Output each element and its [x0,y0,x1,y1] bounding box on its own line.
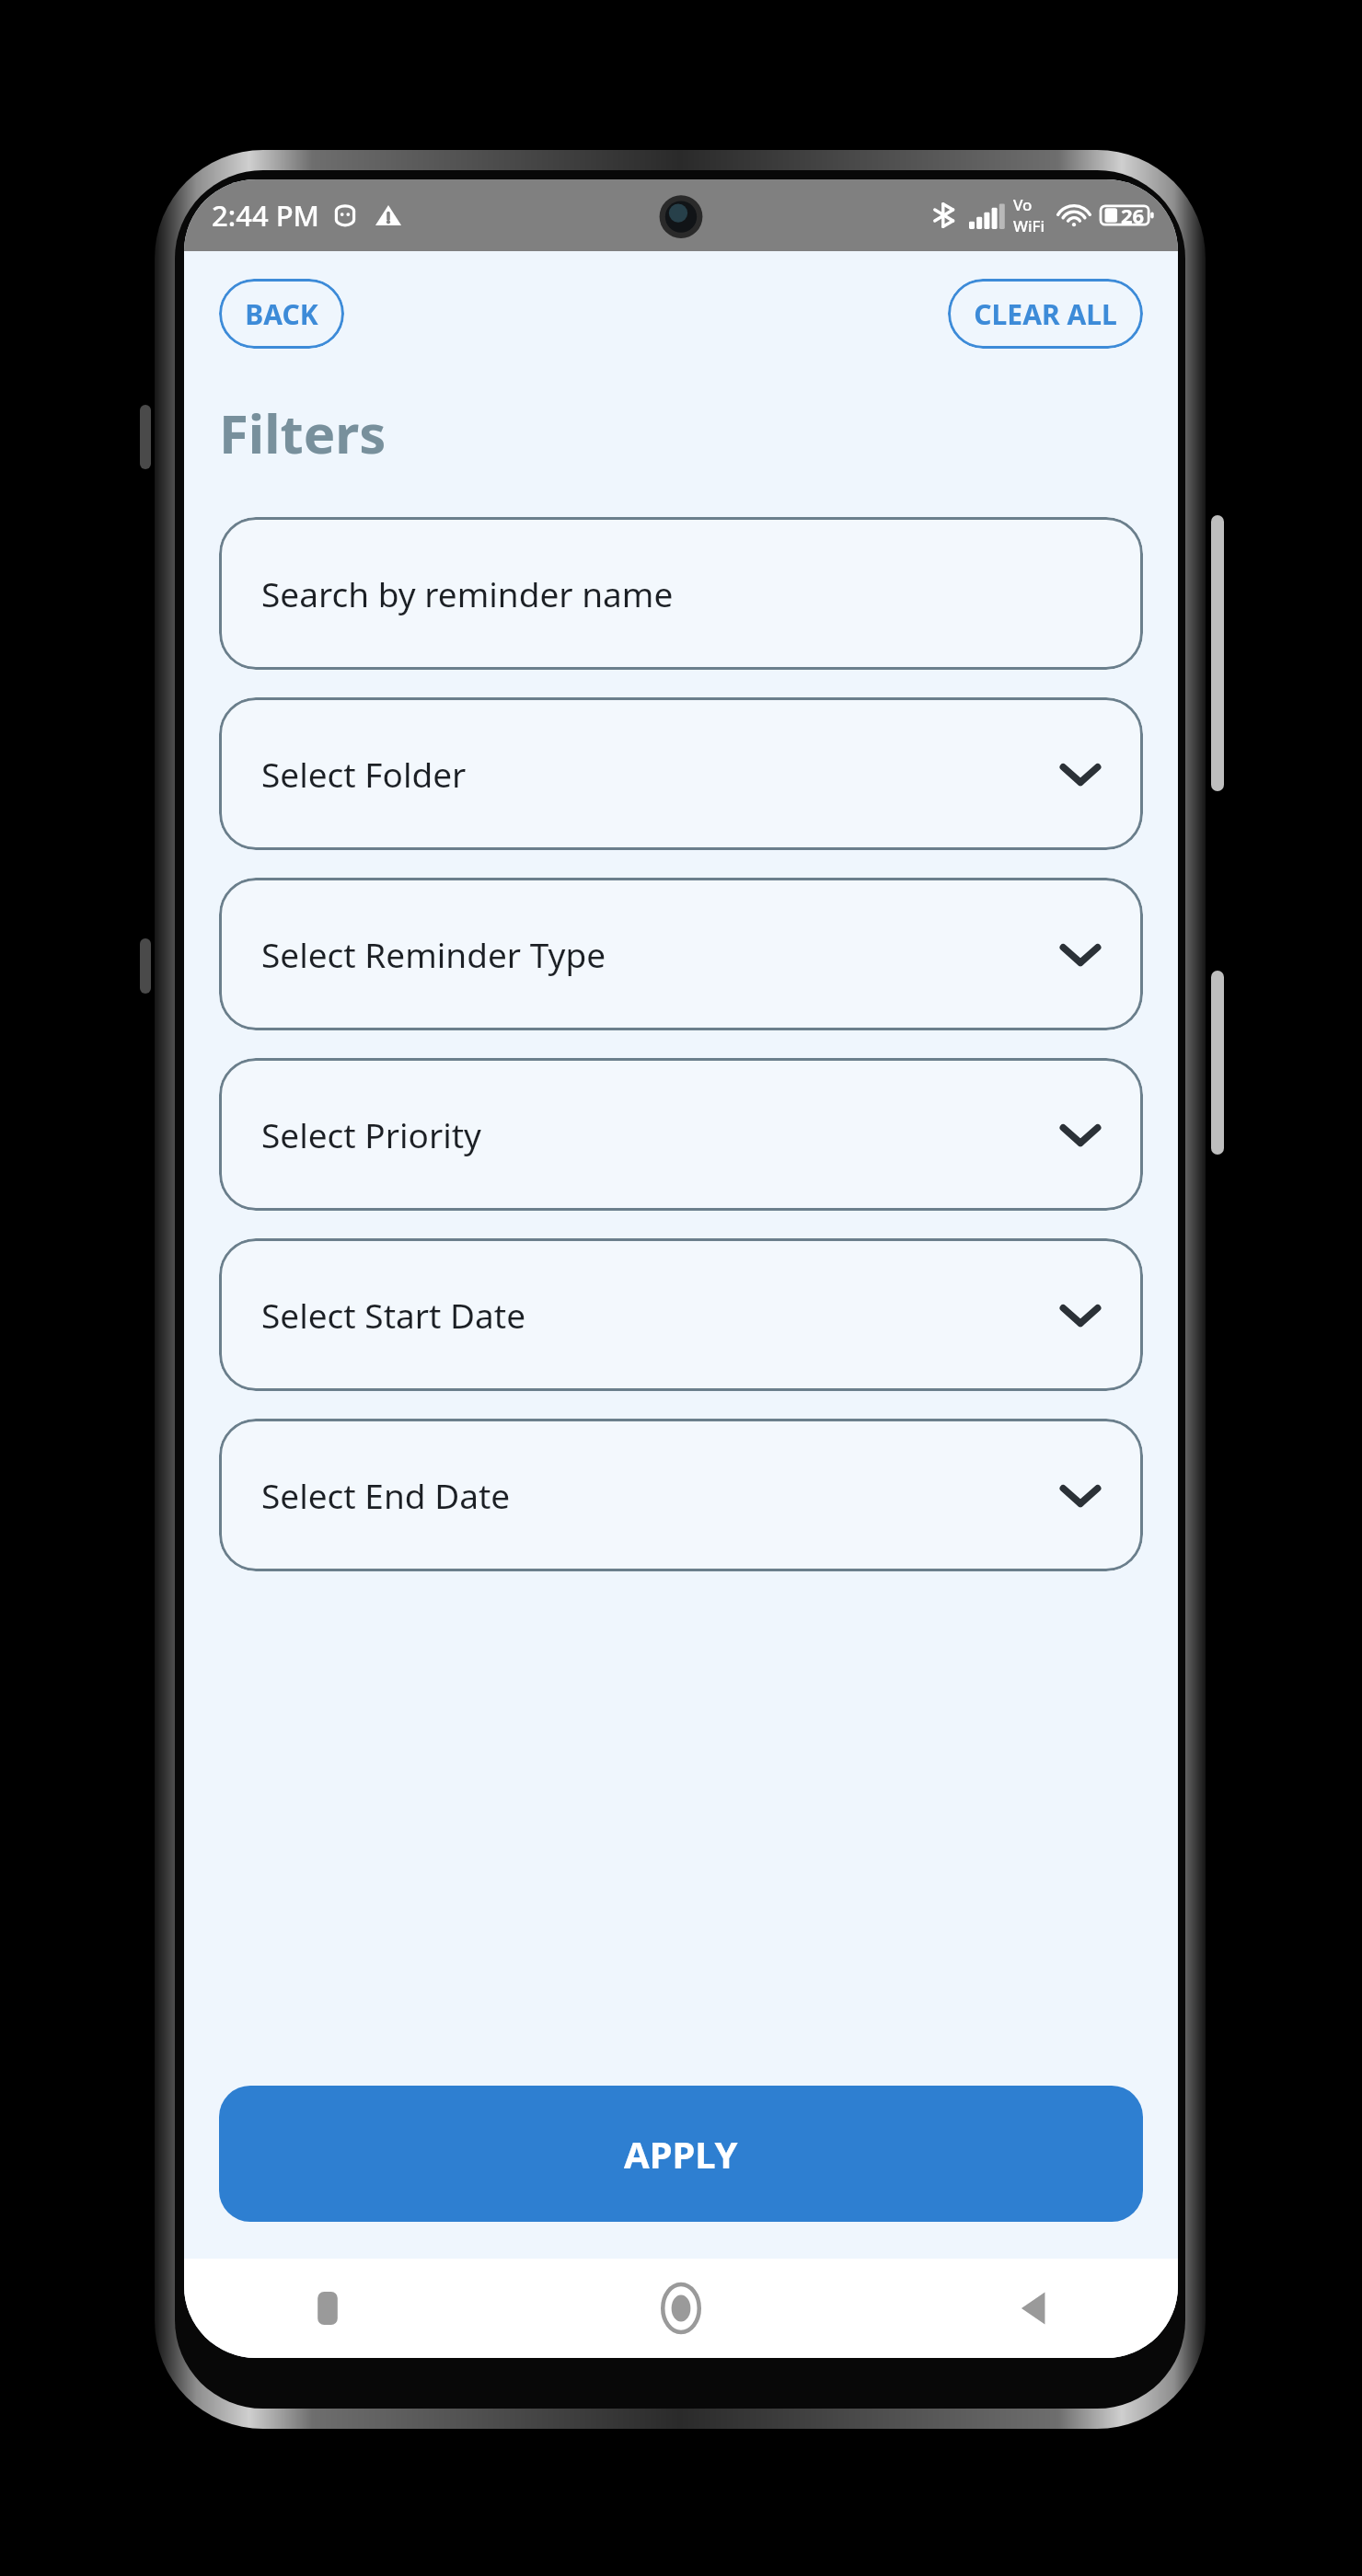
staticText: Select Start Date [261,1292,526,1338]
staticText: CLEAR ALL [974,295,1117,333]
button[interactable]: Select Priority [219,1058,1143,1211]
button[interactable]: Select End Date [219,1419,1143,1571]
staticText: Filters [219,397,387,469]
button[interactable]: Select Folder [219,697,1143,850]
staticText: 2:44 PM [212,196,320,235]
other: Open Select Start Date dropdown [1056,1291,1104,1339]
staticText: Select Priority [261,1111,481,1157]
staticText: BACK [245,295,318,333]
button[interactable]: BACK [219,279,344,349]
staticText: APPLY [624,2129,738,2179]
staticText: Select Reminder Type [261,931,606,977]
staticText: Search by reminder name [261,570,674,616]
other: Open Select Folder dropdown [1056,750,1104,798]
button[interactable]: Back [992,2266,1077,2351]
button[interactable]: Select Reminder Type [219,878,1143,1030]
button[interactable]: Home [639,2266,723,2351]
staticText: WiFi [1013,215,1045,236]
staticText: Select End Date [261,1472,511,1518]
staticText: Vo [1013,194,1033,215]
other: Open Select Priority dropdown [1056,1110,1104,1158]
button[interactable]: Recent apps [285,2266,370,2351]
staticText: Select Folder [261,751,467,797]
staticText: 26 [1121,201,1145,229]
button[interactable]: CLEAR ALL [948,279,1143,349]
button[interactable]: Search by reminder name [219,517,1143,670]
other: Open Select Reminder Type dropdown [1056,930,1104,978]
other: Open Select End Date dropdown [1056,1471,1104,1519]
button[interactable]: Select Start Date [219,1238,1143,1391]
button[interactable]: APPLY [219,2086,1143,2222]
